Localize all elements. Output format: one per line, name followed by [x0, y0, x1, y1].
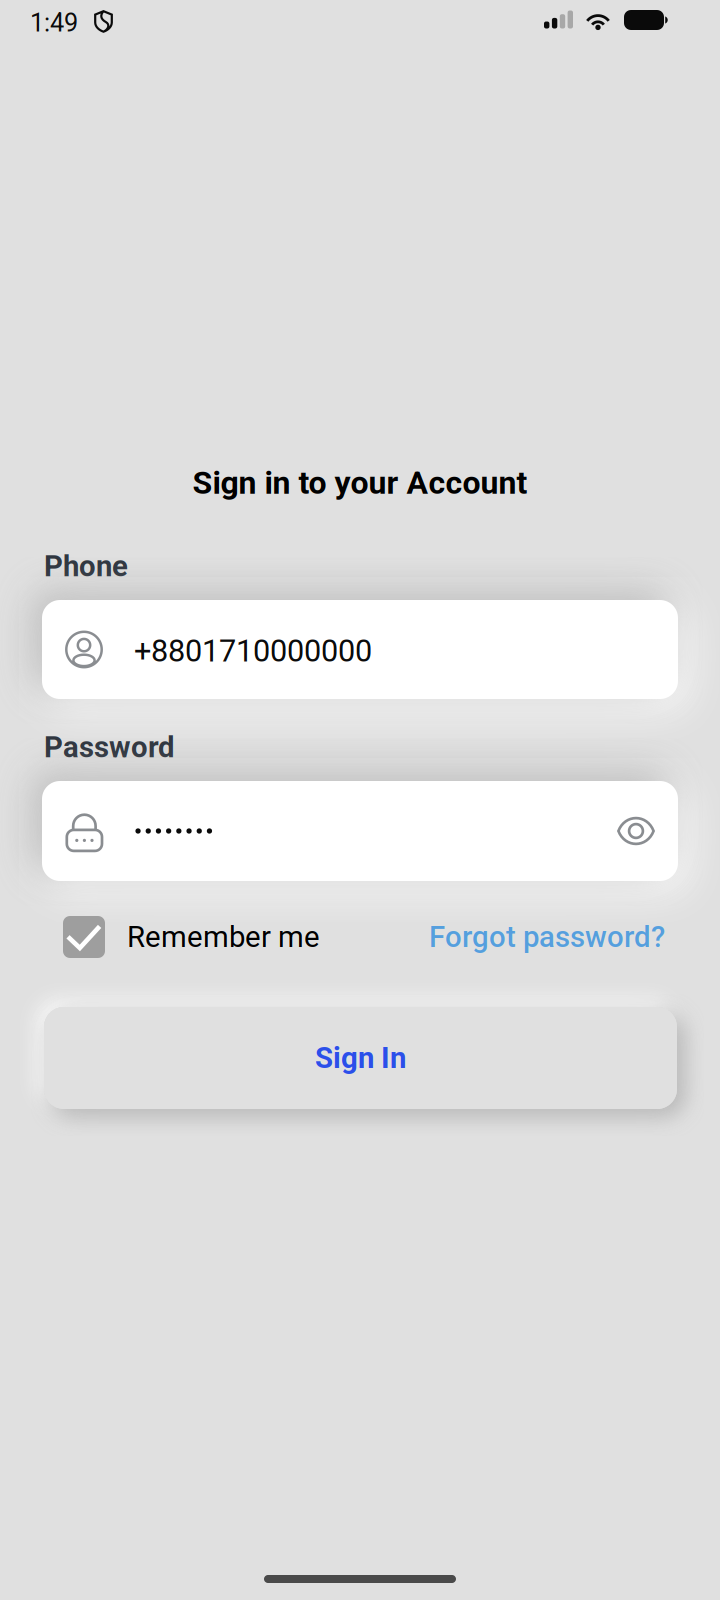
staticText: Sign in to your Account: [192, 464, 527, 501]
staticText: Password: [44, 730, 175, 764]
button[interactable]: Show password: [42, 781, 94, 833]
button[interactable]: Remember me: [63, 916, 320, 958]
staticText: Forgot password?: [429, 920, 665, 954]
staticText: Remember me: [127, 920, 320, 954]
staticText: 1:49: [30, 8, 78, 38]
staticText: Sign In: [315, 1041, 406, 1075]
button[interactable]: Forgot password?: [429, 916, 679, 958]
button[interactable]: Sign In: [44, 1007, 677, 1109]
button[interactable]: [42, 781, 678, 881]
button[interactable]: +8801710000000: [42, 600, 678, 699]
staticText: +8801710000000: [134, 633, 372, 669]
staticText: Phone: [44, 549, 128, 583]
